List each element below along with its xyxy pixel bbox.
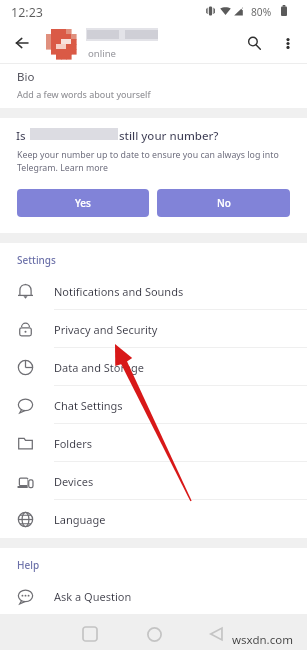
button[interactable]: Notifications and Sounds	[0, 272, 307, 310]
staticText: Is	[16, 128, 26, 144]
button[interactable]: Folders	[0, 424, 307, 462]
staticText: Settings	[17, 253, 56, 267]
staticText: Bio	[17, 69, 35, 85]
staticText: Keep your number up to date to ensure yo…	[17, 149, 279, 174]
staticText: Notifications and Sounds	[54, 284, 184, 299]
staticText: Help	[17, 558, 40, 572]
button[interactable]: More options	[271, 26, 305, 60]
staticText: Ask a Question	[54, 589, 132, 604]
button[interactable]: Language	[0, 500, 307, 538]
button[interactable]: Yes	[17, 189, 149, 217]
button[interactable]: Back	[202, 620, 230, 648]
staticText: Language	[54, 512, 106, 527]
staticText: wsxdn.com	[232, 632, 293, 648]
staticText: still your number?	[119, 128, 219, 144]
button[interactable]: Ask a Question	[0, 577, 307, 615]
button[interactable]: Bio	[0, 64, 307, 108]
staticText: Data and Storage	[54, 360, 144, 375]
button[interactable]: No	[157, 189, 290, 217]
button[interactable]: Devices	[0, 462, 307, 500]
staticText: Devices	[54, 474, 94, 489]
staticText: 80%	[251, 5, 272, 19]
staticText: No	[217, 196, 231, 210]
staticText: 12:23	[11, 4, 43, 21]
button[interactable]: Home	[140, 620, 168, 648]
staticText: Chat Settings	[54, 398, 123, 413]
button[interactable]: Privacy and Security	[0, 310, 307, 348]
staticText: online	[88, 47, 117, 60]
staticText: Yes	[75, 196, 91, 210]
button[interactable]: Recents	[76, 620, 104, 648]
staticText: Privacy and Security	[54, 322, 158, 337]
button[interactable]: Back	[7, 28, 37, 58]
button[interactable]: Data and Storage	[0, 348, 307, 386]
staticText: Add a few words about yourself	[17, 88, 151, 100]
button[interactable]: Search	[235, 24, 273, 62]
staticText: Folders	[54, 436, 92, 451]
button[interactable]: Chat Settings	[0, 386, 307, 424]
